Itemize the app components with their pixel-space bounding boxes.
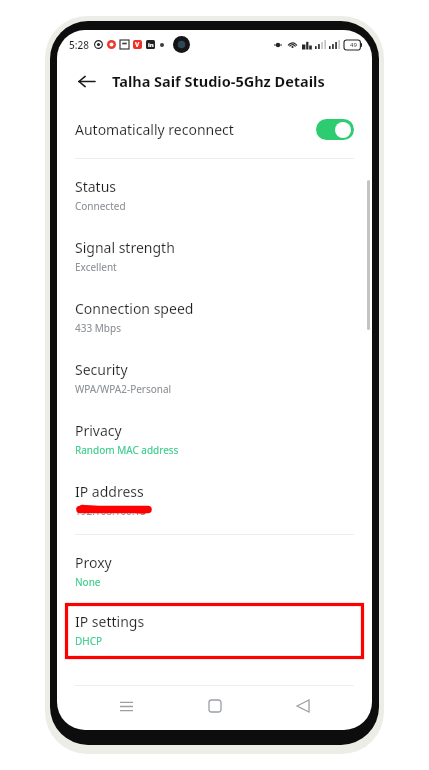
staticText: V [135,40,140,49]
staticText: Proxy [75,553,112,572]
staticText: Signal strength [75,238,175,257]
button[interactable]: Recent apps [106,686,146,726]
staticText: None [75,575,101,589]
staticText: Security [75,360,128,379]
staticText: Talha Saif Studio-5Ghz Details [112,71,325,91]
button[interactable]: Back [69,64,103,98]
button[interactable]: Home [195,686,235,726]
staticText: Excellent [75,260,117,274]
staticText: Status [75,177,117,196]
staticText: 433 Mbps [75,321,121,335]
staticText: Privacy [75,421,122,440]
button[interactable]: Proxy [57,543,372,599]
button[interactable]: Signal strength [57,228,372,284]
button[interactable]: Security [57,350,372,406]
button[interactable]: Automatically reconnect [57,104,372,154]
staticText: IP settings [75,612,145,631]
button[interactable]: IP settings [65,603,364,659]
button[interactable]: Connection speed [57,289,372,345]
staticText: 49 [350,41,357,49]
button[interactable]: Status [57,167,372,223]
staticText: IP address [75,482,144,501]
staticText: 192.168.100.13 [75,504,146,518]
button[interactable]: Back [283,686,323,726]
staticText: 5:28 [69,38,89,52]
staticText: Random MAC address [75,443,179,457]
staticText: Automatically reconnect [75,120,234,139]
staticText: DHCP [75,634,103,648]
button[interactable]: IP address [57,472,372,528]
button[interactable]: Privacy [57,411,372,467]
staticText: WPA/WPA2-Personal [75,382,172,396]
staticText: in [148,41,154,49]
staticText: Connection speed [75,299,194,318]
staticText: Connected [75,199,126,213]
